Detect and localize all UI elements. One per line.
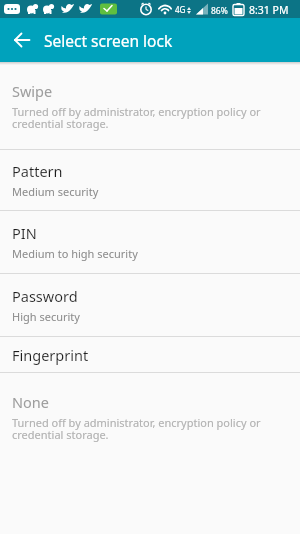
button[interactable]: Fingerprint (0, 337, 300, 372)
button[interactable]: Password (0, 274, 300, 336)
staticText: Fingerprint (12, 345, 89, 365)
staticText: Select screen lock (44, 30, 173, 51)
staticText: Medium security (12, 184, 99, 199)
staticText: Pattern (12, 161, 63, 181)
staticText: Turned off by administrator, encryption … (12, 104, 261, 131)
staticText: Medium to high security (12, 246, 138, 261)
staticText: PIN (12, 223, 37, 243)
staticText: 86% (211, 5, 228, 17)
staticText: Turned off by administrator, encryption … (12, 415, 261, 442)
button[interactable]: Swipe (0, 62, 300, 149)
button[interactable]: PIN (0, 211, 300, 273)
button[interactable] (0, 18, 44, 62)
staticText: High security (12, 309, 80, 324)
button[interactable]: Pattern (0, 150, 300, 210)
staticText: None (12, 392, 49, 412)
button[interactable]: None (0, 373, 300, 460)
staticText: 4G (175, 4, 186, 15)
staticText: Swipe (12, 81, 53, 101)
staticText: 8:31 PM (249, 3, 289, 17)
staticText: Password (12, 286, 78, 306)
